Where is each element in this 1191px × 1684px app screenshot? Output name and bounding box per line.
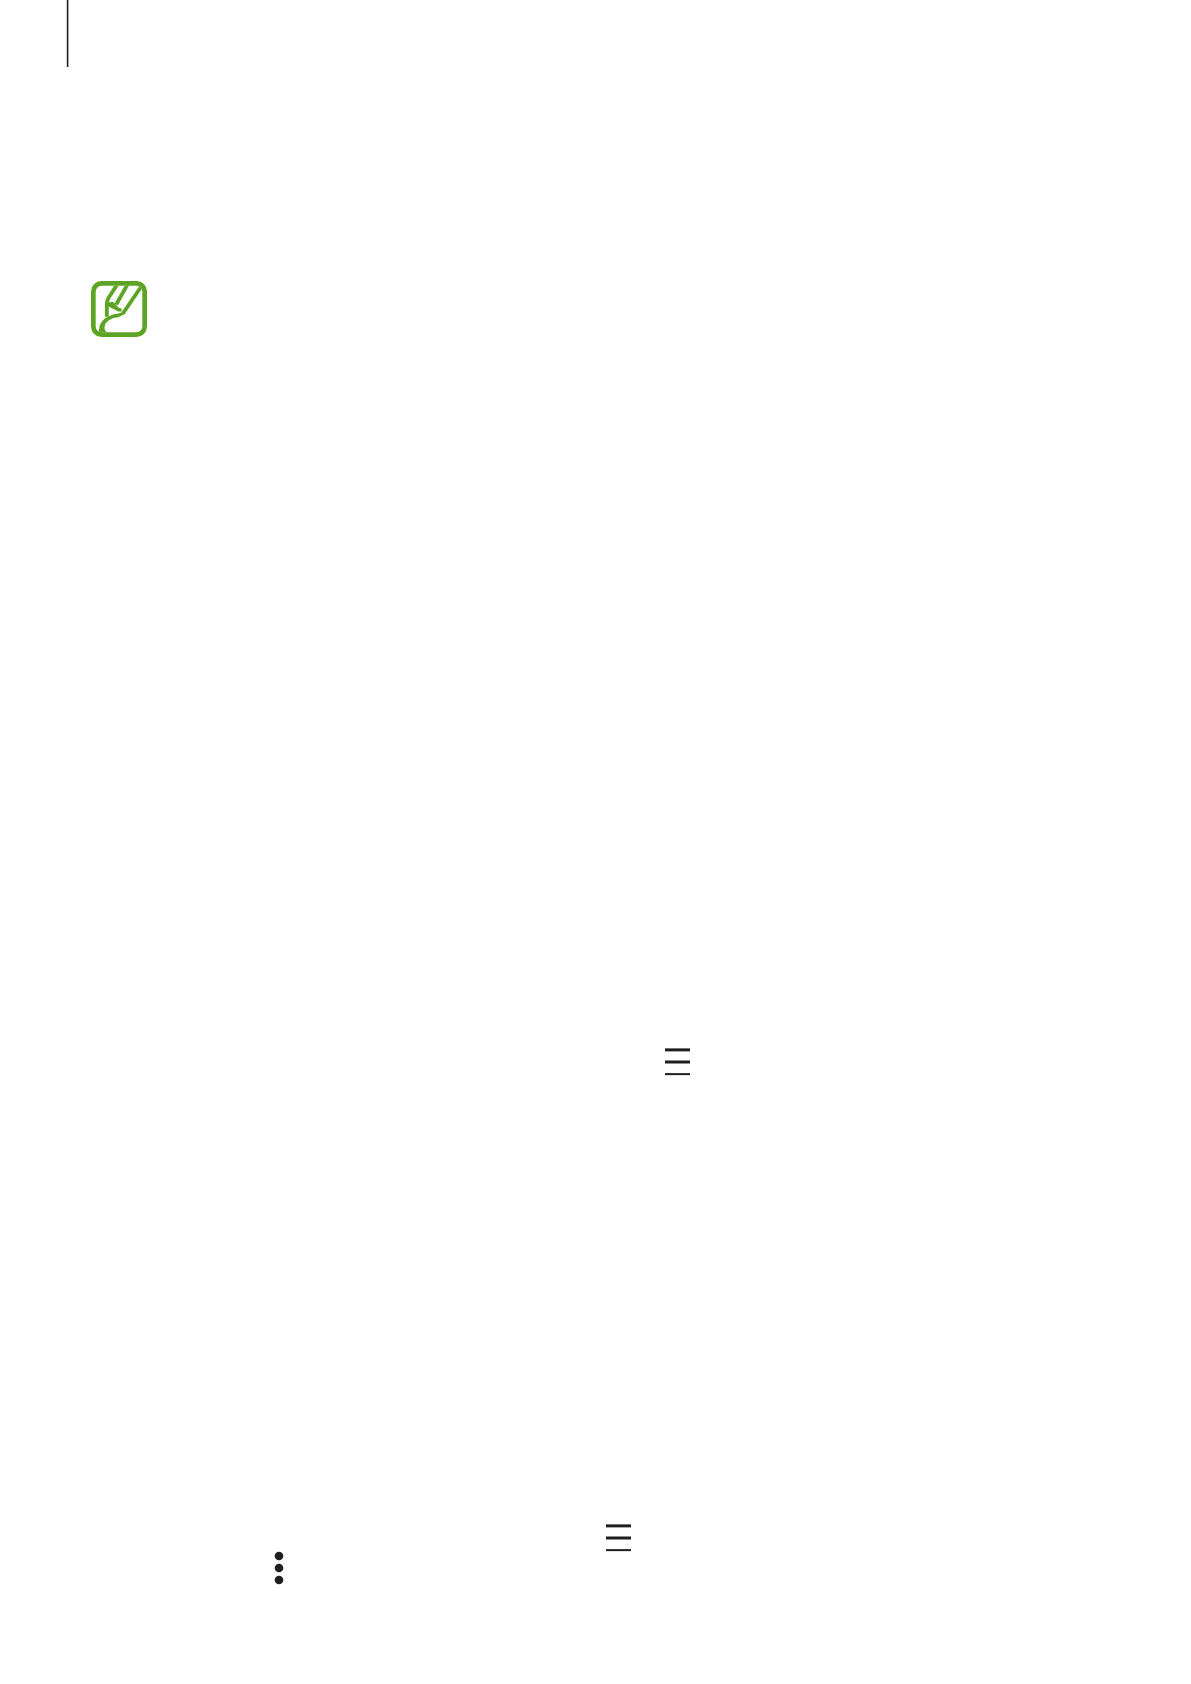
button[interactable]: Menu <box>598 1518 639 1558</box>
button[interactable]: Menu <box>657 1042 698 1082</box>
button[interactable]: Samsung Notes <box>91 281 147 337</box>
button[interactable]: More options <box>262 1545 296 1591</box>
